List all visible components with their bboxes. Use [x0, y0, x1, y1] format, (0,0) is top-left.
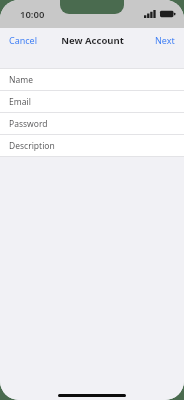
- other: Cellular signal: [144, 10, 156, 18]
- staticText: Email: [9, 96, 31, 108]
- button[interactable]: Email: [0, 91, 184, 112]
- staticText: 10:00: [20, 8, 45, 21]
- other: Battery full: [160, 10, 176, 18]
- staticText: Name: [9, 74, 33, 86]
- button[interactable]: Next: [146, 30, 184, 50]
- staticText: Password: [9, 118, 48, 130]
- staticText: Description: [9, 140, 55, 152]
- button[interactable]: Password: [0, 113, 184, 134]
- staticText: Next: [155, 34, 175, 46]
- button[interactable]: Description: [0, 135, 184, 156]
- button[interactable]: Name: [0, 69, 184, 90]
- button[interactable]: Cancel: [0, 30, 47, 50]
- staticText: New Account: [61, 34, 124, 47]
- staticText: Cancel: [9, 34, 38, 46]
